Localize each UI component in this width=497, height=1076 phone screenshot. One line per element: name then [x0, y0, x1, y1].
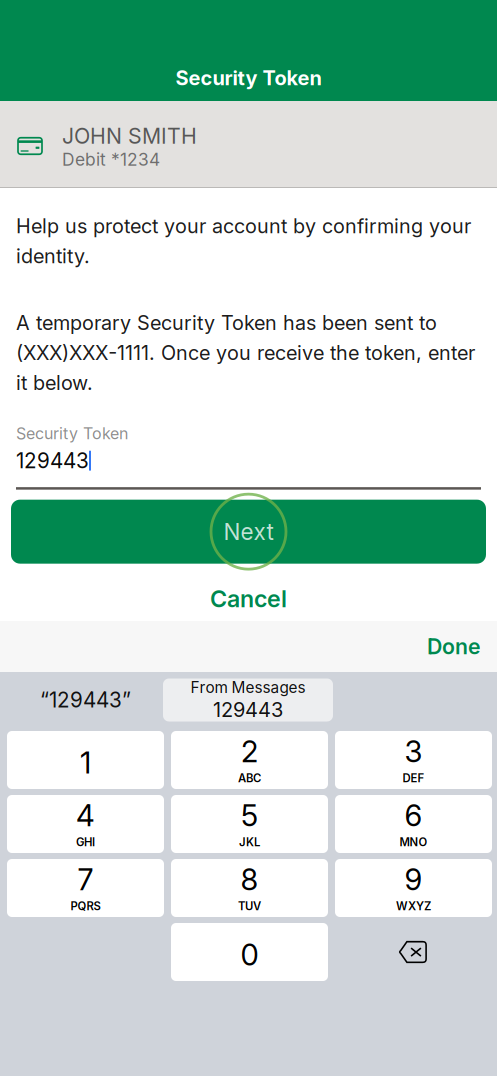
staticText: PQRS	[70, 899, 100, 913]
staticText: 129443	[16, 448, 89, 473]
button[interactable]: 3	[335, 731, 492, 789]
staticText: JOHN SMITH	[62, 123, 197, 149]
button[interactable]: 6	[335, 795, 492, 853]
staticText: ABC	[238, 771, 261, 785]
staticText: 8	[240, 862, 258, 897]
staticText: 5	[241, 798, 258, 833]
button[interactable]: 2	[171, 731, 328, 789]
staticText: Cancel	[210, 584, 287, 613]
staticText: 3	[404, 734, 422, 769]
button[interactable]: 5	[171, 795, 328, 853]
staticText: TUV	[238, 899, 261, 913]
staticText: Security Token	[16, 424, 128, 443]
staticText: From Messages	[190, 678, 305, 697]
staticText: 4	[76, 798, 95, 833]
button[interactable]: Done	[411, 624, 497, 669]
staticText: 0	[240, 937, 258, 972]
button[interactable]: 0	[171, 923, 328, 981]
button[interactable]: Delete	[335, 923, 492, 981]
button[interactable]: Cancel	[16, 588, 481, 610]
button[interactable]: Next	[11, 500, 486, 564]
staticText: Next	[223, 518, 273, 545]
staticText: A temporary Security Token has been sent…	[16, 311, 475, 395]
staticText: 6	[404, 798, 422, 833]
staticText: Security Token	[175, 66, 321, 90]
staticText: 1	[80, 745, 91, 780]
staticText: Help us protect your account by confirmi…	[16, 214, 471, 268]
button[interactable]: 1	[7, 731, 164, 789]
staticText: DEF	[402, 771, 424, 785]
staticText: 129443	[213, 698, 283, 722]
button[interactable]: 4	[7, 795, 164, 853]
button[interactable]: 8	[171, 859, 328, 917]
staticText: 7	[77, 862, 93, 897]
button[interactable]: 7	[7, 859, 164, 917]
staticText: Debit *1234	[62, 149, 160, 170]
staticText: “129443”	[40, 687, 131, 712]
staticText: 2	[241, 734, 258, 769]
button[interactable]: 9	[335, 859, 492, 917]
staticText: Done	[427, 634, 481, 659]
staticText: WXYZ	[396, 899, 431, 913]
staticText: GHI	[76, 835, 95, 849]
staticText: 9	[404, 862, 422, 897]
staticText: JKL	[239, 835, 260, 849]
staticText: MNO	[399, 835, 427, 849]
